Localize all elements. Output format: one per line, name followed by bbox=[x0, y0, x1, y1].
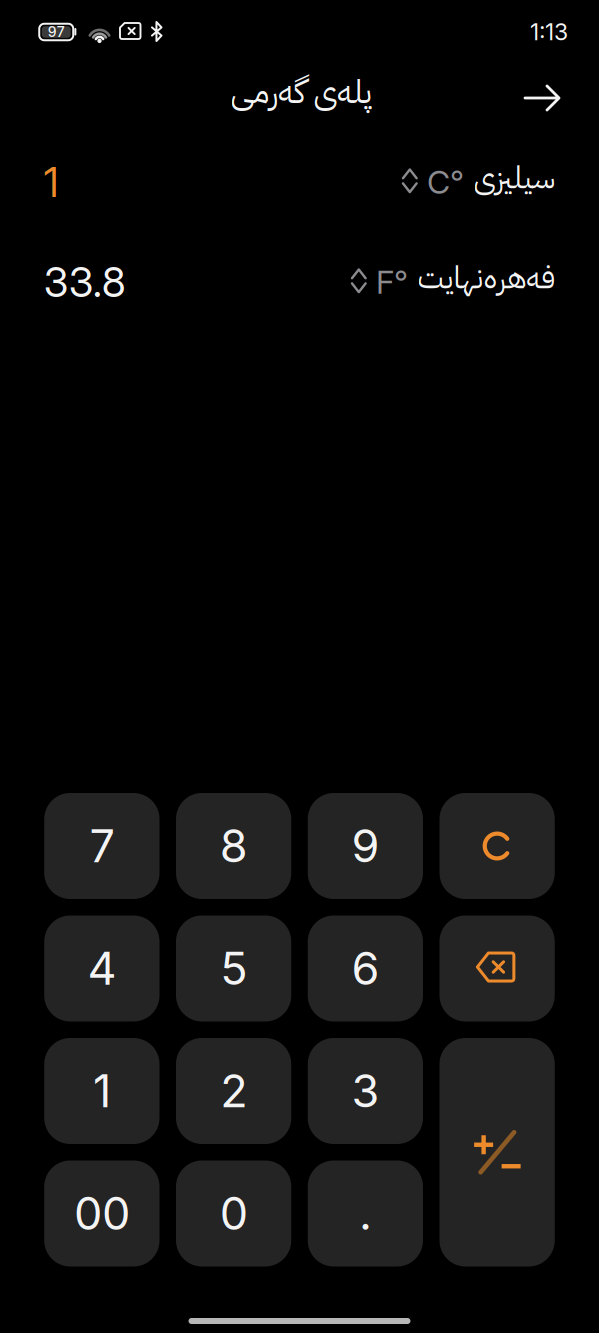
button[interactable]: 7 bbox=[44, 793, 159, 899]
staticText: 1:13 bbox=[530, 18, 568, 46]
staticText: 5 bbox=[220, 941, 247, 996]
staticText: 97 bbox=[48, 23, 65, 40]
staticText: سیلیزی bbox=[473, 155, 555, 201]
button[interactable]: 2 bbox=[176, 1038, 291, 1144]
staticText: پله‌ی گەرمی bbox=[230, 67, 371, 117]
button[interactable]: 1 bbox=[44, 1038, 159, 1144]
button[interactable]: 4 bbox=[44, 915, 159, 1021]
button[interactable]: 8 bbox=[176, 793, 291, 899]
staticText: 2 bbox=[220, 1064, 247, 1118]
staticText: 8 bbox=[220, 819, 248, 873]
staticText: 4 bbox=[87, 941, 116, 996]
staticText: . bbox=[359, 1186, 372, 1241]
staticText: 1 bbox=[93, 1064, 111, 1118]
button[interactable]: 1 bbox=[0, 132, 599, 232]
staticText: 9 bbox=[351, 819, 379, 873]
staticText: 0 bbox=[220, 1186, 248, 1241]
button[interactable]: 0 bbox=[176, 1160, 291, 1266]
staticText: 33.8 bbox=[44, 257, 126, 307]
button[interactable]: Next bbox=[513, 74, 571, 122]
staticText: 3 bbox=[351, 1064, 379, 1118]
button[interactable]: Backspace bbox=[439, 915, 555, 1021]
staticText: 7 bbox=[89, 819, 114, 873]
staticText: 6 bbox=[351, 941, 379, 996]
staticText: C° bbox=[427, 163, 464, 201]
button[interactable]: . bbox=[308, 1160, 423, 1266]
button[interactable]: 00 bbox=[44, 1160, 159, 1266]
button[interactable]: 33.8 bbox=[0, 232, 599, 332]
button[interactable]: 3 bbox=[308, 1038, 423, 1144]
button[interactable]: 9 bbox=[308, 793, 423, 899]
button[interactable]: Toggle sign bbox=[439, 1038, 555, 1266]
staticText: 1 bbox=[44, 157, 59, 207]
button[interactable]: 5 bbox=[176, 915, 291, 1021]
staticText: F° bbox=[376, 263, 408, 301]
button[interactable]: 6 bbox=[308, 915, 423, 1021]
staticText: فەهرەنهایت bbox=[417, 255, 555, 301]
staticText: 00 bbox=[74, 1186, 130, 1241]
button[interactable]: Clear bbox=[439, 793, 555, 899]
